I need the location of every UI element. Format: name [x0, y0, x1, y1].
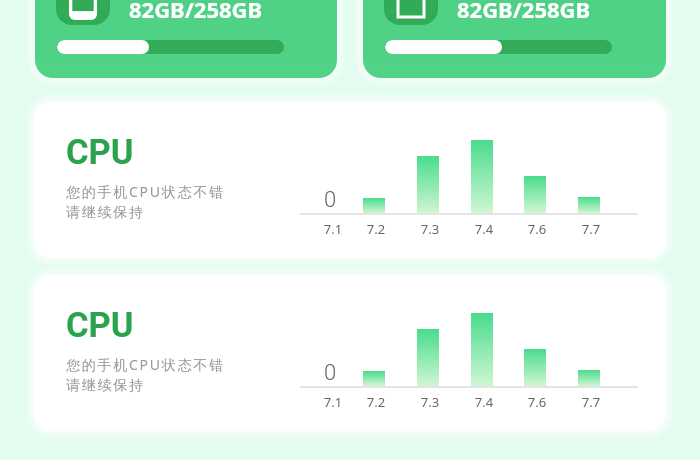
staticText: 7.7 — [571, 393, 611, 411]
staticText: 您的手机CPU状态不错 请继续保持 — [66, 182, 225, 221]
staticText: 0 — [324, 187, 337, 213]
staticText: 7.3 — [410, 220, 450, 238]
staticText: CPU — [66, 132, 134, 172]
staticText: 7.7 — [571, 220, 611, 238]
staticText: 7.4 — [464, 393, 504, 411]
button[interactable]: Storage usage — [35, 0, 337, 78]
button[interactable]: Storage usage — [56, 0, 110, 25]
staticText: 7.1 — [313, 393, 353, 411]
staticText: 7.2 — [356, 220, 396, 238]
button[interactable]: CPU — [34, 102, 666, 258]
staticText: 82GB/258GB — [129, 0, 263, 24]
button[interactable]: Memory usage — [384, 0, 438, 25]
staticText: 7.3 — [410, 393, 450, 411]
staticText: CPU — [66, 305, 134, 345]
staticText: 0 — [324, 360, 337, 386]
staticText: 7.4 — [464, 220, 504, 238]
staticText: 7.6 — [517, 393, 557, 411]
staticText: 7.1 — [313, 220, 353, 238]
button[interactable]: Memory usage — [363, 0, 666, 78]
staticText: 7.2 — [356, 393, 396, 411]
staticText: 82GB/258GB — [457, 0, 591, 24]
staticText: 7.6 — [517, 220, 557, 238]
staticText: 您的手机CPU状态不错 请继续保持 — [66, 355, 225, 394]
button[interactable]: CPU — [34, 275, 666, 431]
